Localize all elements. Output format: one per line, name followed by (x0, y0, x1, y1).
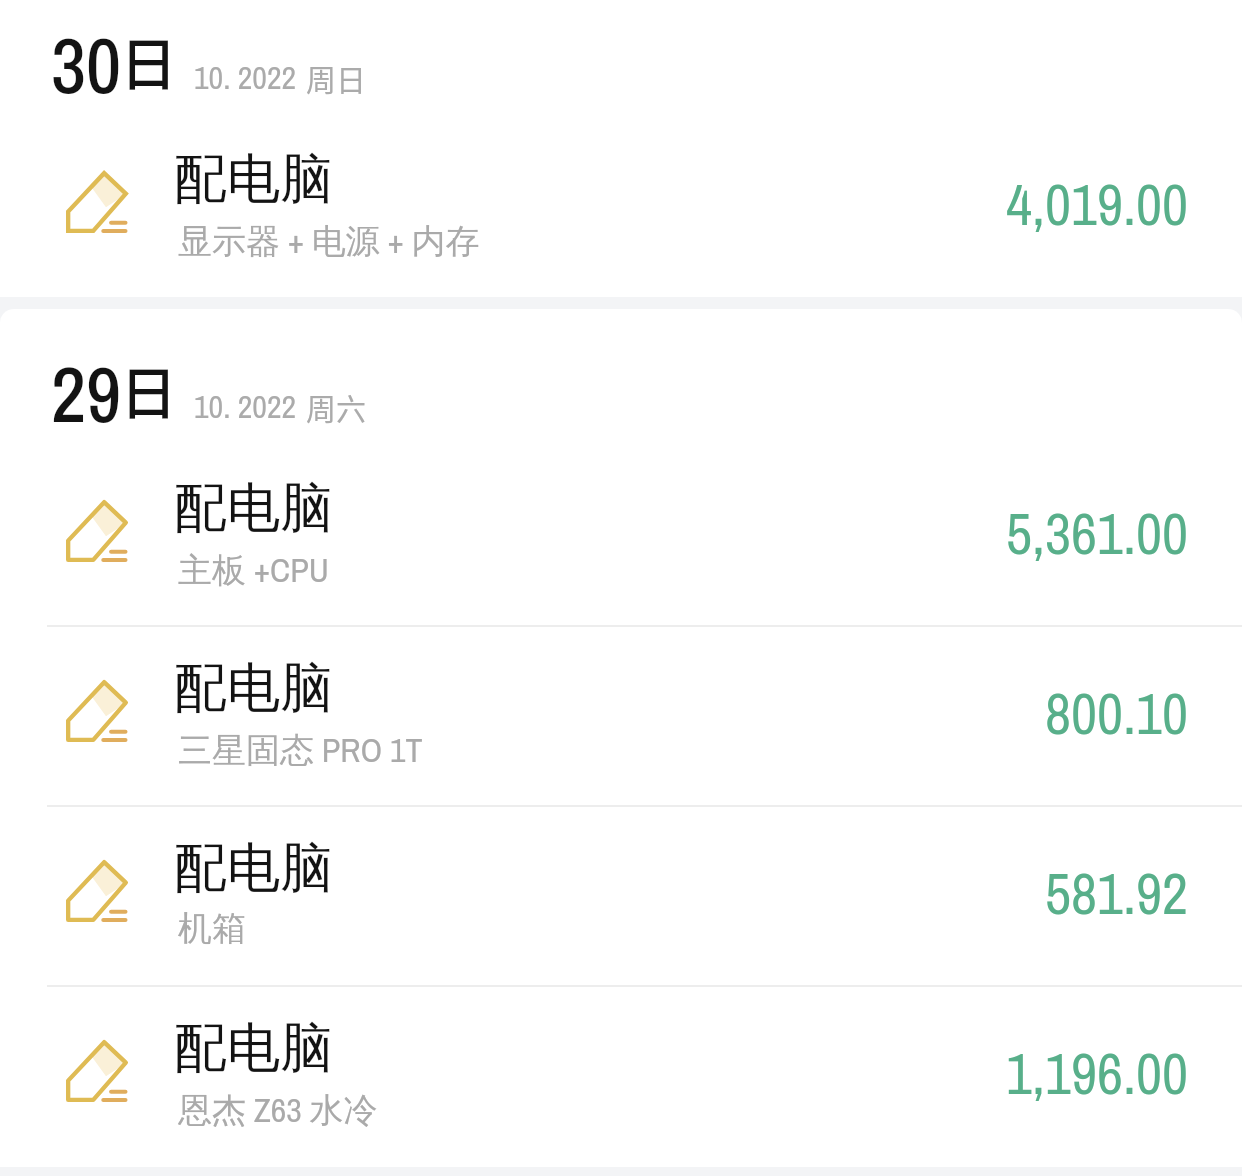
staticText: 日 (120, 348, 177, 431)
staticText: 10. 2022 (194, 385, 297, 428)
staticText: 日 (120, 19, 177, 102)
staticText: 29 (51, 342, 122, 446)
staticText: 配电脑 (174, 835, 333, 902)
staticText: 30 (51, 13, 122, 117)
staticText: 配电脑 (174, 1015, 333, 1082)
button[interactable]: 配电脑 (0, 625, 1242, 805)
staticText: 显示器 + 电源 + 内存 (178, 218, 480, 264)
staticText: 581.92 (0, 855, 1188, 932)
staticText: 配电脑 (174, 655, 333, 722)
staticText: 800.10 (0, 675, 1188, 752)
staticText: 三星固态 PRO 1T (178, 727, 423, 773)
staticText: 配电脑 (174, 475, 333, 542)
staticText: 10. 2022 (194, 56, 297, 99)
staticText: 4,019.00 (0, 166, 1188, 243)
button[interactable]: 配电脑 (0, 445, 1242, 625)
button[interactable]: 配电脑 (0, 985, 1242, 1165)
staticText: 周六 (306, 385, 366, 428)
staticText: 5,361.00 (0, 495, 1188, 572)
staticText: 1,196.00 (0, 1035, 1188, 1112)
staticText: 主板 +CPU (178, 547, 329, 593)
staticText: 机箱 (178, 907, 246, 950)
button[interactable]: 配电脑 (0, 116, 1242, 296)
staticText: 周日 (306, 56, 366, 99)
button[interactable]: 配电脑 (0, 805, 1242, 985)
staticText: 配电脑 (174, 146, 333, 213)
staticText: 恩杰 Z63 水冷 (178, 1087, 378, 1133)
